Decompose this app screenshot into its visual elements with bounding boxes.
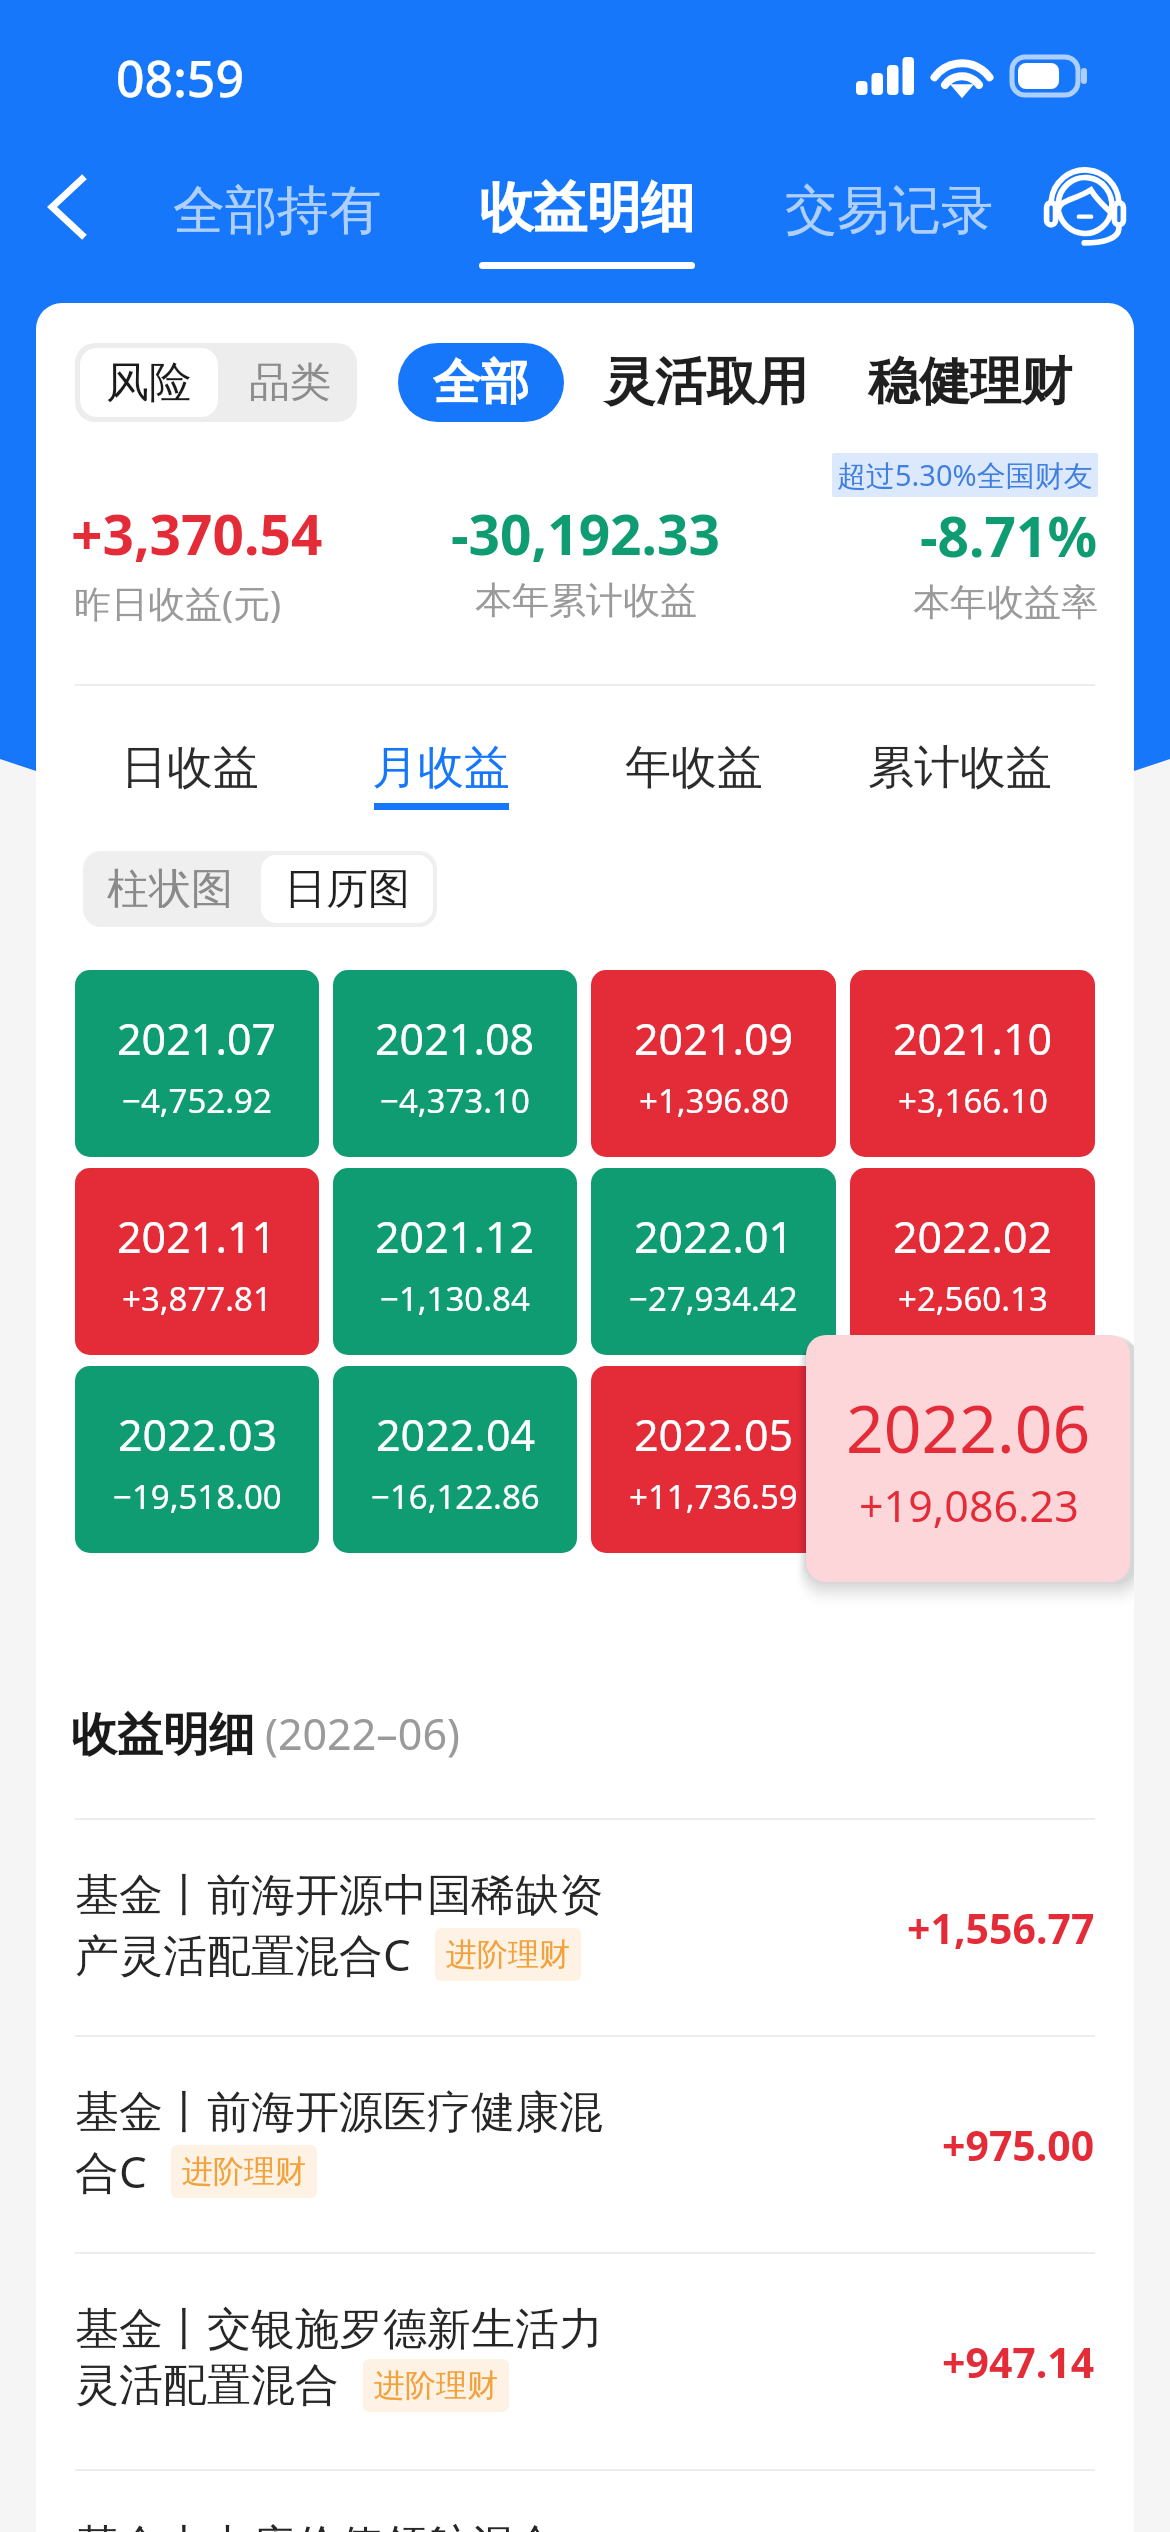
staticText: 风险	[106, 356, 192, 410]
button[interactable]: 2022.02	[850, 1168, 1095, 1355]
staticText: 品类	[249, 357, 331, 409]
staticText: −27,934.42	[629, 1276, 798, 1321]
staticText: 进阶理财	[446, 1935, 570, 1974]
staticText: −16,122.86	[371, 1474, 540, 1519]
button[interactable]: 2022.05	[591, 1366, 836, 1553]
staticText: 交易记录	[785, 178, 993, 244]
button[interactable]: 基金丨前海开源中国稀缺资	[75, 1820, 1095, 2035]
button[interactable]: 2021.09	[591, 970, 836, 1157]
button[interactable]: 月收益	[356, 731, 526, 818]
staticText: +2,560.13	[898, 1276, 1048, 1321]
button[interactable]: 基金丨前海开源医疗健康混	[75, 2037, 1095, 2252]
staticText: 基金丨前海开源中国稀缺资	[75, 1868, 603, 1923]
staticText: 2021.11	[117, 1207, 277, 1266]
staticText: 累计收益	[868, 739, 1052, 797]
staticText: 2021.07	[117, 1009, 277, 1068]
staticText: 进阶理财	[182, 2152, 306, 2191]
staticText: +3,370.54	[71, 496, 323, 571]
staticText: 灵活配置混合	[75, 2358, 339, 2413]
staticText: 08:59	[116, 44, 244, 112]
button[interactable]: 基金丨交银施罗德新生活力	[75, 2254, 1095, 2469]
button[interactable]: 2022.04	[333, 1366, 577, 1553]
staticText: +11,736.59	[629, 1474, 798, 1519]
button[interactable]: 2022.03	[75, 1366, 319, 1553]
button[interactable]: 年收益	[609, 731, 779, 818]
staticText: 2021.10	[893, 1009, 1053, 1068]
staticText: 本年累计收益	[475, 577, 697, 624]
button[interactable]: Back	[22, 162, 112, 252]
staticText: 日历图	[284, 863, 410, 916]
button[interactable]: 全部	[398, 343, 564, 422]
staticText: 2022.06	[846, 1382, 1091, 1472]
button[interactable]: 稳健理财	[855, 340, 1085, 424]
staticText: +1,396.80	[639, 1078, 789, 1123]
button[interactable]: 2022.01	[591, 1168, 836, 1355]
staticText: 2022.06	[893, 1405, 1053, 1464]
button[interactable]: 收益明细	[469, 166, 705, 277]
button[interactable]: 风险	[75, 343, 357, 422]
staticText: +19,086.23	[888, 1474, 1057, 1519]
staticText: 灵活取用	[604, 350, 808, 414]
staticText: +947.14	[942, 2334, 1095, 2390]
staticText: 产灵活配置混合C	[75, 1924, 411, 1984]
staticText: 2021.12	[375, 1207, 535, 1266]
button[interactable]: Customer service	[1035, 157, 1135, 257]
button[interactable]: 累计收益	[852, 731, 1068, 818]
staticText: −19,518.00	[113, 1474, 282, 1519]
staticText: (2022–06)	[265, 1704, 460, 1763]
staticText: 基金丨中庚价值领航混合	[75, 2519, 559, 2532]
button[interactable]: 日收益	[105, 731, 275, 818]
button[interactable]: 2022.06	[850, 1366, 1095, 1553]
staticText: 2022.04	[376, 1405, 536, 1464]
button[interactable]: 2021.10	[850, 970, 1095, 1157]
staticText: -8.71%	[920, 498, 1098, 573]
staticText: +3,166.10	[898, 1078, 1048, 1123]
staticText: 昨日收益(元)	[74, 577, 282, 628]
button[interactable]: 2022.06	[806, 1335, 1130, 1582]
button[interactable]: 基金丨中庚价值领航混合	[75, 2471, 1095, 2532]
button[interactable]: 柱状图	[83, 851, 437, 927]
button[interactable]: 全部持有	[163, 168, 391, 254]
staticText: 收益明细	[71, 1706, 255, 1764]
button[interactable]: 2021.08	[333, 970, 577, 1157]
staticText: -30,192.33	[451, 496, 720, 571]
staticText: 日收益	[121, 739, 259, 797]
button[interactable]: 2021.07	[75, 970, 319, 1157]
staticText: −1,130.84	[380, 1276, 530, 1321]
staticText: 2022.05	[634, 1405, 794, 1464]
staticText: 稳健理财	[868, 350, 1072, 414]
staticText: 2021.09	[634, 1009, 794, 1068]
staticText: 全部	[433, 353, 529, 413]
staticText: 柱状图	[107, 863, 233, 916]
staticText: 基金丨前海开源医疗健康混	[75, 2085, 603, 2140]
staticText: 全部持有	[173, 178, 381, 244]
staticText: 进阶理财	[374, 2366, 498, 2405]
button[interactable]: 2021.12	[333, 1168, 577, 1355]
staticText: 2022.02	[893, 1207, 1053, 1266]
staticText: +19,086.23	[859, 1476, 1079, 1535]
staticText: 月收益	[372, 739, 510, 797]
button[interactable]: 灵活取用	[591, 340, 821, 424]
staticText: 收益明细	[479, 174, 695, 242]
staticText: −4,752.92	[122, 1078, 272, 1123]
staticText: 2022.03	[118, 1405, 278, 1464]
staticText: 2022.01	[634, 1207, 794, 1266]
staticText: +3,877.81	[122, 1276, 272, 1321]
staticText: +1,556.77	[907, 1900, 1095, 1956]
button[interactable]: 2021.11	[75, 1168, 319, 1355]
staticText: 本年收益率	[913, 579, 1098, 626]
staticText: 超过5.30%全国财友	[837, 455, 1093, 495]
staticText: −4,373.10	[380, 1078, 530, 1123]
staticText: 合C	[75, 2141, 147, 2201]
staticText: 年收益	[625, 739, 763, 797]
staticText: 基金丨交银施罗德新生活力	[75, 2302, 603, 2357]
staticText: +975.00	[942, 2117, 1095, 2173]
staticText: 2021.08	[375, 1009, 535, 1068]
button[interactable]: 交易记录	[775, 168, 1003, 254]
